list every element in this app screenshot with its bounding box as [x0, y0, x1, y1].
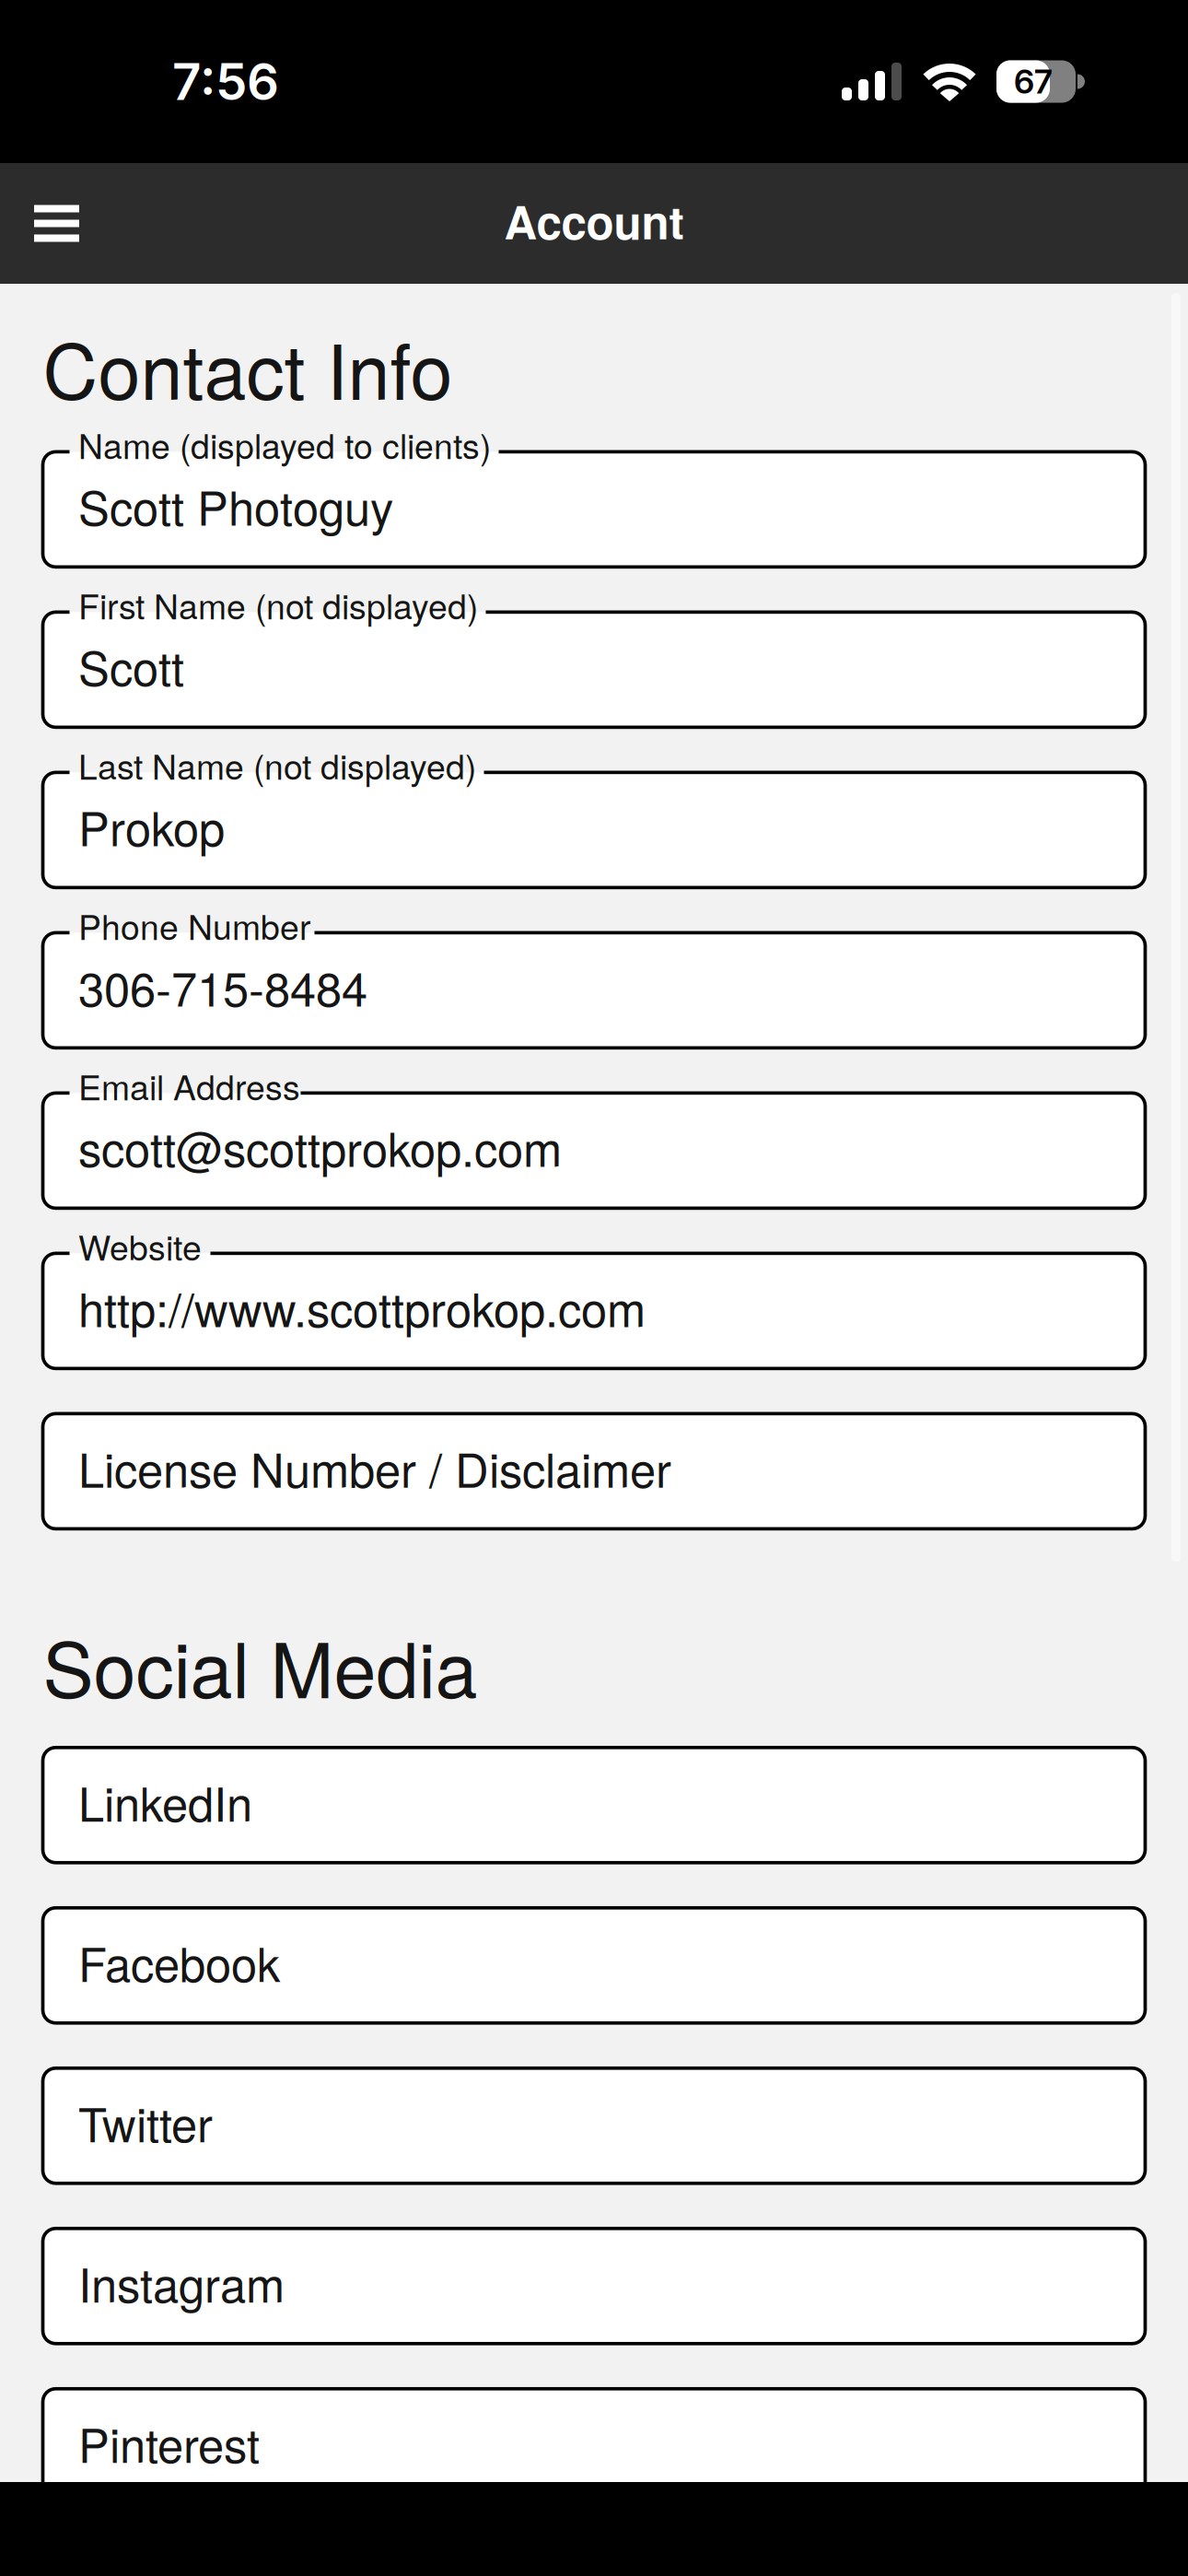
- staticText: scott@scottprokop.com: [78, 1113, 562, 1180]
- button[interactable]: scott@scottprokop.com: [43, 1093, 1145, 1208]
- button[interactable]: Prokop: [43, 772, 1145, 888]
- button[interactable]: Instagram: [43, 2228, 1145, 2344]
- button[interactable]: Scott: [43, 612, 1145, 727]
- staticText: Twitter: [78, 2089, 213, 2156]
- staticText: Prokop: [78, 793, 225, 860]
- staticText: Pinterest: [78, 2409, 260, 2476]
- button[interactable]: Pinterest: [43, 2389, 1145, 2504]
- staticText: Last Name (not displayed): [78, 740, 476, 789]
- staticText: 67: [1014, 61, 1053, 102]
- staticText: License Number / Disclaimer: [78, 1434, 671, 1501]
- staticText: Scott: [78, 632, 184, 699]
- staticText: Name (displayed to clients): [78, 420, 491, 469]
- staticText: Website: [78, 1221, 202, 1270]
- staticText: Phone Number: [78, 900, 310, 950]
- staticText: Scott Photoguy: [78, 472, 393, 539]
- staticText: Instagram: [78, 2249, 285, 2316]
- staticText: Social Media: [43, 1611, 478, 1720]
- staticText: First Name (not displayed): [78, 580, 478, 629]
- staticText: LinkedIn: [78, 1768, 252, 1835]
- button[interactable]: License Number / Disclaimer: [43, 1414, 1145, 1529]
- staticText: http://www.scottprokop.com: [78, 1274, 646, 1341]
- staticText: 7:56: [172, 51, 279, 112]
- button[interactable]: http://www.scottprokop.com: [43, 1253, 1145, 1369]
- button[interactable]: Scott Photoguy: [43, 452, 1145, 567]
- staticText: Account: [504, 188, 684, 253]
- button[interactable]: LinkedIn: [43, 1748, 1145, 1863]
- button[interactable]: Menu: [0, 164, 116, 283]
- staticText: Email Address: [78, 1061, 300, 1110]
- staticText: 306-715-8484: [78, 953, 367, 1020]
- staticText: Facebook: [78, 1928, 280, 1995]
- staticText: Contact Info: [43, 312, 453, 421]
- button[interactable]: 306-715-8484: [43, 933, 1145, 1048]
- button[interactable]: Twitter: [43, 2068, 1145, 2183]
- button[interactable]: Facebook: [43, 1908, 1145, 2023]
